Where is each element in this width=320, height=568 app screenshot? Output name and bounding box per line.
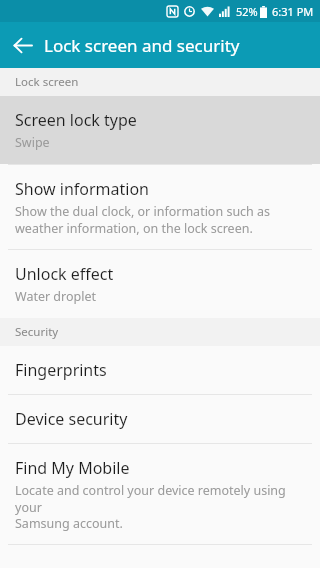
staticText: Unlock effect xyxy=(15,263,114,285)
staticText: Show information xyxy=(15,178,149,200)
button[interactable]: Screen lock type xyxy=(0,96,320,164)
button[interactable]: Unlock effect xyxy=(0,250,320,318)
staticText: Show the dual clock, or information such… xyxy=(15,203,271,236)
staticText: 6:31 PM xyxy=(272,4,314,19)
button[interactable]: Fingerprints xyxy=(0,346,320,394)
button[interactable]: Back xyxy=(0,23,44,67)
staticText: Lock screen xyxy=(15,74,79,90)
staticText: Swipe xyxy=(15,134,50,151)
staticText: 52% xyxy=(236,4,258,19)
staticText: Device security xyxy=(15,408,128,430)
staticText: Lock screen and security xyxy=(44,34,240,57)
staticText: Water droplet xyxy=(15,288,97,305)
button[interactable]: Find My Mobile xyxy=(0,444,320,544)
staticText: Locate and control your device remotely … xyxy=(15,482,308,531)
staticText: Fingerprints xyxy=(15,359,107,381)
staticText: Security xyxy=(15,324,59,340)
button[interactable]: Device security xyxy=(0,395,320,443)
staticText: Find My Mobile xyxy=(15,457,130,479)
button[interactable]: Show information xyxy=(0,165,320,249)
staticText: Screen lock type xyxy=(15,109,137,131)
